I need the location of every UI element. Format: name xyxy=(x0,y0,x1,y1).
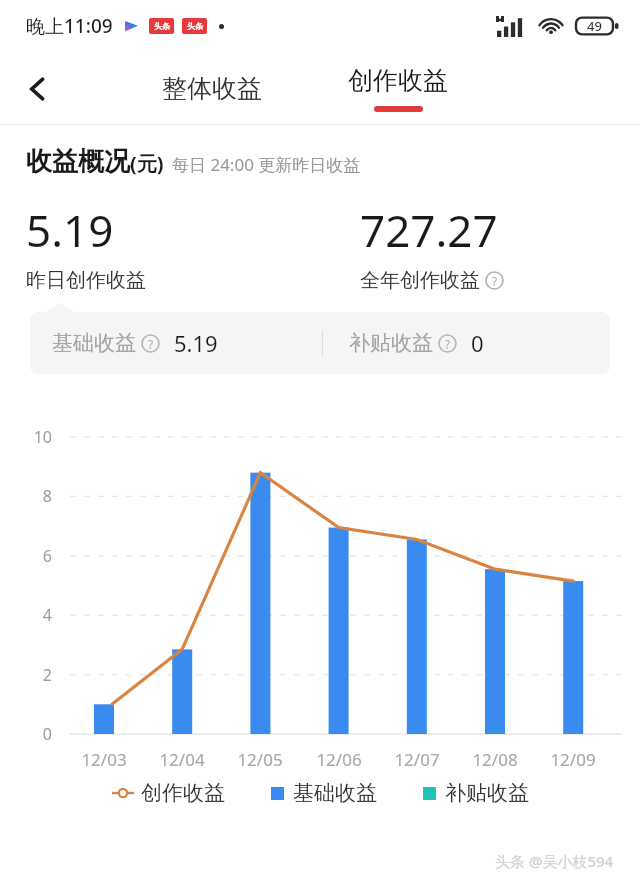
button[interactable]: Help xyxy=(438,334,457,353)
staticText: 创作收益 xyxy=(141,780,225,806)
button[interactable]: 整体收益 xyxy=(150,65,274,112)
staticText: 49 xyxy=(587,17,602,35)
staticText: 5.19 xyxy=(26,200,114,260)
button[interactable]: 基础收益 xyxy=(30,312,610,374)
staticText: 每日 24:00 更新昨日收益 xyxy=(172,153,361,176)
button[interactable]: Help xyxy=(485,271,504,290)
staticText: 全年创作收益 xyxy=(360,268,480,293)
button[interactable]: Back xyxy=(12,63,64,115)
staticText: ? xyxy=(492,273,498,289)
staticText: 头条 @吴小枝594 xyxy=(495,851,614,871)
staticText: 8 xyxy=(18,485,52,507)
button[interactable]: 补贴收益 xyxy=(417,780,535,806)
staticText: 12/06 xyxy=(303,748,375,771)
staticText: 创作收益 xyxy=(348,65,448,96)
staticText: 基础收益 xyxy=(293,780,377,806)
staticText: 727.27 xyxy=(360,200,498,260)
staticText: 10 xyxy=(18,426,52,448)
staticText: 12/07 xyxy=(381,748,453,771)
staticText: 12/04 xyxy=(146,748,218,771)
staticText: 6 xyxy=(18,545,52,567)
button[interactable]: 创作收益 xyxy=(336,65,460,112)
staticText: ? xyxy=(148,336,154,352)
staticText: 12/09 xyxy=(537,748,609,771)
button[interactable]: Help xyxy=(141,334,160,353)
staticText: 基础收益 xyxy=(52,330,136,356)
staticText: 4 xyxy=(18,604,52,626)
staticText: 昨日创作收益 xyxy=(26,268,146,293)
button[interactable]: 创作收益 xyxy=(106,780,231,806)
staticText: 12/08 xyxy=(459,748,531,771)
staticText: 0 xyxy=(471,328,484,358)
staticText: (元) xyxy=(130,150,164,177)
staticText: 补贴收益 xyxy=(445,780,529,806)
staticText: 5.19 xyxy=(174,328,218,358)
staticText: 头条 xyxy=(187,21,203,31)
staticText: 补贴收益 xyxy=(349,330,433,356)
staticText: 整体收益 xyxy=(162,73,262,104)
staticText: 晚上11:09 xyxy=(26,13,113,39)
staticText: 头条 xyxy=(154,21,170,31)
button[interactable]: 基础收益 xyxy=(265,780,383,806)
staticText: 12/05 xyxy=(224,748,296,771)
staticText: 12/03 xyxy=(68,748,140,771)
staticText: 2 xyxy=(18,664,52,686)
staticText: 收益概况 xyxy=(26,145,130,178)
staticText: 0 xyxy=(18,723,52,745)
staticText: ? xyxy=(445,336,451,352)
